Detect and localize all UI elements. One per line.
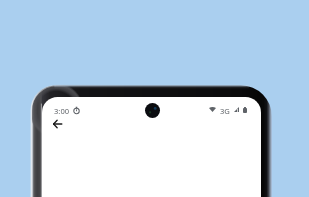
staticText: 3:00: [54, 106, 70, 116]
staticText: 3G: [220, 106, 230, 116]
button[interactable]: Back: [47, 113, 68, 134]
